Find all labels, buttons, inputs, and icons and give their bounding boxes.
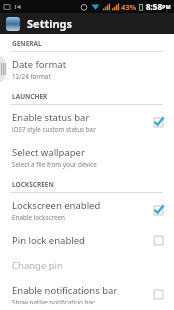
- staticText: Show native notification bar: [12, 298, 95, 304]
- button[interactable]: Checked: [153, 205, 164, 216]
- staticText: LOCKSCREEN: [12, 180, 54, 189]
- staticText: Change pin: [12, 259, 63, 272]
- button[interactable]: Date format: [0, 52, 174, 87]
- staticText: iOS7 style custom status bar: [12, 125, 96, 134]
- button[interactable]: Unchecked: [153, 235, 164, 246]
- staticText: GENERAL: [12, 39, 42, 48]
- button[interactable]: Pin lock enabled: [0, 228, 174, 253]
- staticText: Date format: [12, 58, 67, 71]
- button[interactable]: Enable notifications bar: [0, 278, 174, 310]
- staticText: Lockscreen enabled: [12, 199, 101, 212]
- button[interactable]: Unchecked: [153, 289, 164, 300]
- button[interactable]: Lockscreen enabled: [0, 193, 174, 228]
- staticText: Pin lock enabled: [12, 234, 85, 247]
- staticText: Select wallpaper: [12, 146, 85, 159]
- staticText: Settings: [27, 16, 73, 31]
- staticText: Enable notifications bar: [12, 284, 118, 297]
- staticText: 8:58: [146, 1, 162, 12]
- button[interactable]: Checked: [153, 117, 164, 128]
- staticText: PM: [162, 3, 171, 10]
- button[interactable]: Select wallpaper: [0, 140, 174, 175]
- staticText: LAUNCHER: [12, 92, 48, 101]
- staticText: Enable status bar: [12, 111, 90, 124]
- staticText: 12/24 format: [12, 72, 51, 81]
- staticText: Select a file from your device: [12, 160, 97, 169]
- button[interactable]: Enable status bar: [0, 105, 174, 140]
- staticText: Enable lockscreen: [12, 213, 65, 222]
- staticText: 43%: [121, 2, 137, 12]
- button[interactable]: Open navigation drawer: [0, 56, 7, 82]
- button[interactable]: Change pin: [0, 253, 174, 278]
